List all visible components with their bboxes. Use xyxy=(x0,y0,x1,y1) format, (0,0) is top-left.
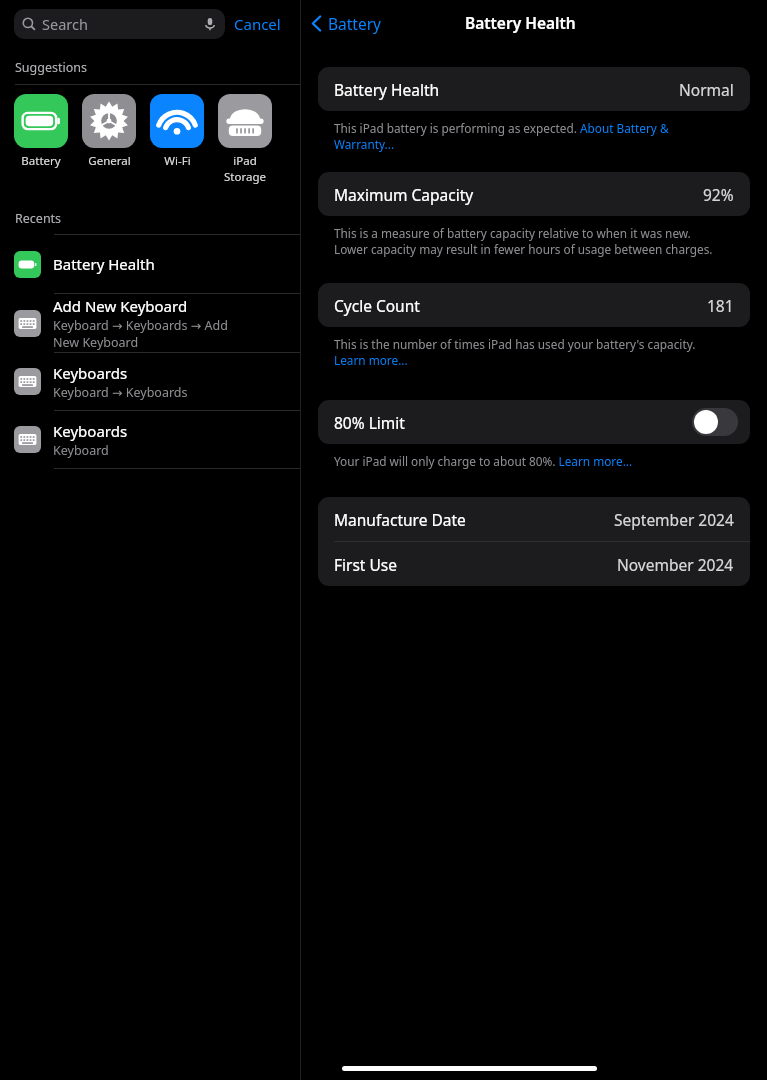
staticText: September 2024 xyxy=(614,509,734,530)
button[interactable]: Keyboards xyxy=(0,411,300,468)
other: Dictation xyxy=(203,17,217,31)
staticText: Battery Health xyxy=(334,79,679,100)
button[interactable]: Search xyxy=(14,9,225,39)
button[interactable]: Cycle Count xyxy=(318,283,750,327)
staticText: Wi-Fi xyxy=(164,153,191,169)
staticText: Your iPad will only charge to about 80%.… xyxy=(334,453,633,469)
button[interactable]: Keyboards xyxy=(0,353,300,410)
button[interactable]: General xyxy=(82,94,136,169)
button[interactable]: First Use xyxy=(318,542,750,586)
staticText: General xyxy=(88,153,131,169)
button[interactable]: Cancel xyxy=(225,10,290,38)
staticText: First Use xyxy=(334,554,617,575)
staticText: Maximum Capacity xyxy=(334,184,703,205)
staticText: Cycle Count xyxy=(334,295,707,316)
staticText: This iPad battery is performing as expec… xyxy=(334,120,669,153)
button[interactable]: Manufacture Date xyxy=(318,497,750,541)
button[interactable]: Battery Health xyxy=(318,67,750,111)
staticText: Normal xyxy=(679,79,734,100)
staticText: Battery Health xyxy=(53,254,155,274)
staticText: Battery xyxy=(328,13,382,34)
button[interactable]: iPad Storage xyxy=(218,94,272,185)
staticText: Keyboards xyxy=(53,421,128,441)
staticText: 181 xyxy=(707,295,734,316)
staticText: November 2024 xyxy=(617,554,734,575)
staticText: Keyboards xyxy=(53,363,128,383)
staticText: Recents xyxy=(15,210,62,227)
button[interactable]: Maximum Capacity xyxy=(318,172,750,216)
staticText: Suggestions xyxy=(15,59,88,76)
staticText: Battery Health xyxy=(465,12,576,33)
staticText: Battery xyxy=(21,153,61,169)
staticText: 92% xyxy=(703,184,734,205)
staticText: Keyboard → Keyboards xyxy=(53,384,188,401)
staticText: Keyboard xyxy=(53,442,109,459)
staticText: Cancel xyxy=(234,14,281,34)
staticText: Manufacture Date xyxy=(334,509,614,530)
other: 80% Limit toggle, off xyxy=(692,408,738,436)
button[interactable]: Battery xyxy=(301,9,392,38)
button[interactable]: Battery Health xyxy=(0,235,300,293)
staticText: Search xyxy=(42,14,203,34)
staticText: This is a measure of battery capacity re… xyxy=(334,225,713,258)
staticText: Keyboard → Keyboards → Add New Keyboard xyxy=(53,317,228,351)
staticText: Add New Keyboard xyxy=(53,296,188,316)
button[interactable]: Wi-Fi xyxy=(150,94,204,169)
button[interactable]: 80% Limit xyxy=(318,400,750,444)
staticText: This is the number of times iPad has use… xyxy=(334,336,696,369)
button[interactable]: Add New Keyboard xyxy=(0,294,300,352)
staticText: 80% Limit xyxy=(334,412,692,433)
staticText: iPad Storage xyxy=(224,153,266,185)
button[interactable]: Battery xyxy=(14,94,68,169)
